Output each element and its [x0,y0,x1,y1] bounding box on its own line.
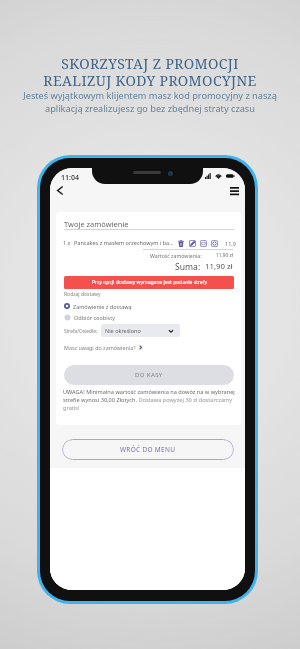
staticText: DO KASY [135,371,163,379]
button[interactable]: Odbiór osobisty [64,312,116,322]
button[interactable]: Back [53,183,67,197]
staticText: Jesteś wyjątkowym klijentem masz kod pro… [0,89,300,102]
staticText: Strefa/Osiedle: [64,328,98,335]
button[interactable]: DO KASY [64,365,234,385]
button[interactable]: Decrease [198,238,208,248]
staticText: Zamówienie z dostawą [73,303,132,310]
staticText: 11,9 [225,240,236,247]
staticText: 11,90 zł [216,252,234,259]
button[interactable]: WRÓĆ DO MENU [62,439,234,460]
staticText: Masz uwagi do zamówienia? [64,344,136,351]
button[interactable]: Masz uwagi do zamówienia? [64,342,142,352]
button[interactable]: Menu [227,183,242,198]
staticText: REALIZUJ KODY PROMOCYJNE [0,71,300,90]
button[interactable]: Zamówienie z dostawą [64,301,132,311]
staticText: Rodzaj dostawy [64,291,101,298]
button[interactable]: Edit [187,238,197,248]
staticText: Nie określono [105,327,141,334]
button[interactable]: Delete [176,238,186,248]
staticText: WRÓĆ DO MENU [120,445,176,454]
staticText: Odbiór osobisty [74,314,116,321]
staticText: Wartość zamówienia: [150,252,202,259]
staticText: Przy opcji dostawy wymagane jest podanie… [92,279,207,286]
button[interactable]: Nie określono [101,324,180,337]
button[interactable]: Przy opcji dostawy wymagane jest podanie… [64,276,234,289]
staticText: 11,90 zł [205,261,233,272]
staticText: Suma: [175,261,201,273]
staticText: SKORZYSTAJ Z PROMOCJI [0,54,300,73]
button[interactable]: Increase [209,238,219,248]
staticText: UWAGA! Minimalna wartość zamówienia na d… [63,388,236,412]
staticText: 1 x [63,239,71,246]
staticText: Twoje zamówienie [64,219,129,229]
staticText: Pancakes z masłem orzechowym i ba... [74,239,174,246]
staticText: 11:04 [61,173,79,183]
staticText: aplikacją zrealizujesz go bez zbędnej st… [0,102,300,115]
